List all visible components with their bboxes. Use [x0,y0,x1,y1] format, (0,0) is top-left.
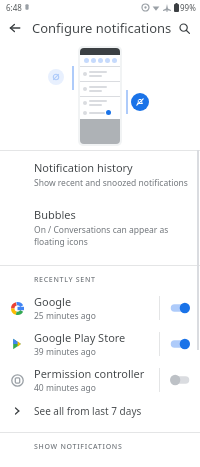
staticText: See all from last 7 days [34,404,142,418]
staticText: Show recent and snoozed notifications [34,177,188,189]
staticText: Bubbles [34,207,76,222]
staticText: 39 minutes ago [34,346,96,358]
button[interactable]: Bubbles [0,198,200,257]
staticText: 40 minutes ago [34,382,96,394]
staticText: RECENTLY SENT [34,275,96,285]
button[interactable]: Toggle on [160,326,200,362]
staticText: Google Play Store [34,330,126,345]
button[interactable]: See all from last 7 days [0,398,200,424]
button[interactable]: Toggle on [160,290,200,326]
staticText: 99% [180,2,196,13]
button[interactable]: Permission controller [0,362,200,398]
staticText: Google [34,294,72,309]
button[interactable]: Google Play Store [0,326,200,362]
button[interactable]: Notification history [0,151,200,198]
button[interactable]: Search [173,17,195,39]
staticText: Notification history [34,160,133,175]
staticText: 6:48 [6,2,22,13]
staticText: 25 minutes ago [34,310,96,322]
staticText: On / Conversations can appear as floatin… [34,224,188,248]
button[interactable]: Toggle off [160,362,200,398]
staticText: Permission controller [34,366,145,381]
button[interactable]: Google [0,290,200,326]
button[interactable]: Back [4,17,26,39]
staticText: Configure notifications [32,19,172,37]
staticText: SHOW NOTIFICATIONS [34,442,123,452]
